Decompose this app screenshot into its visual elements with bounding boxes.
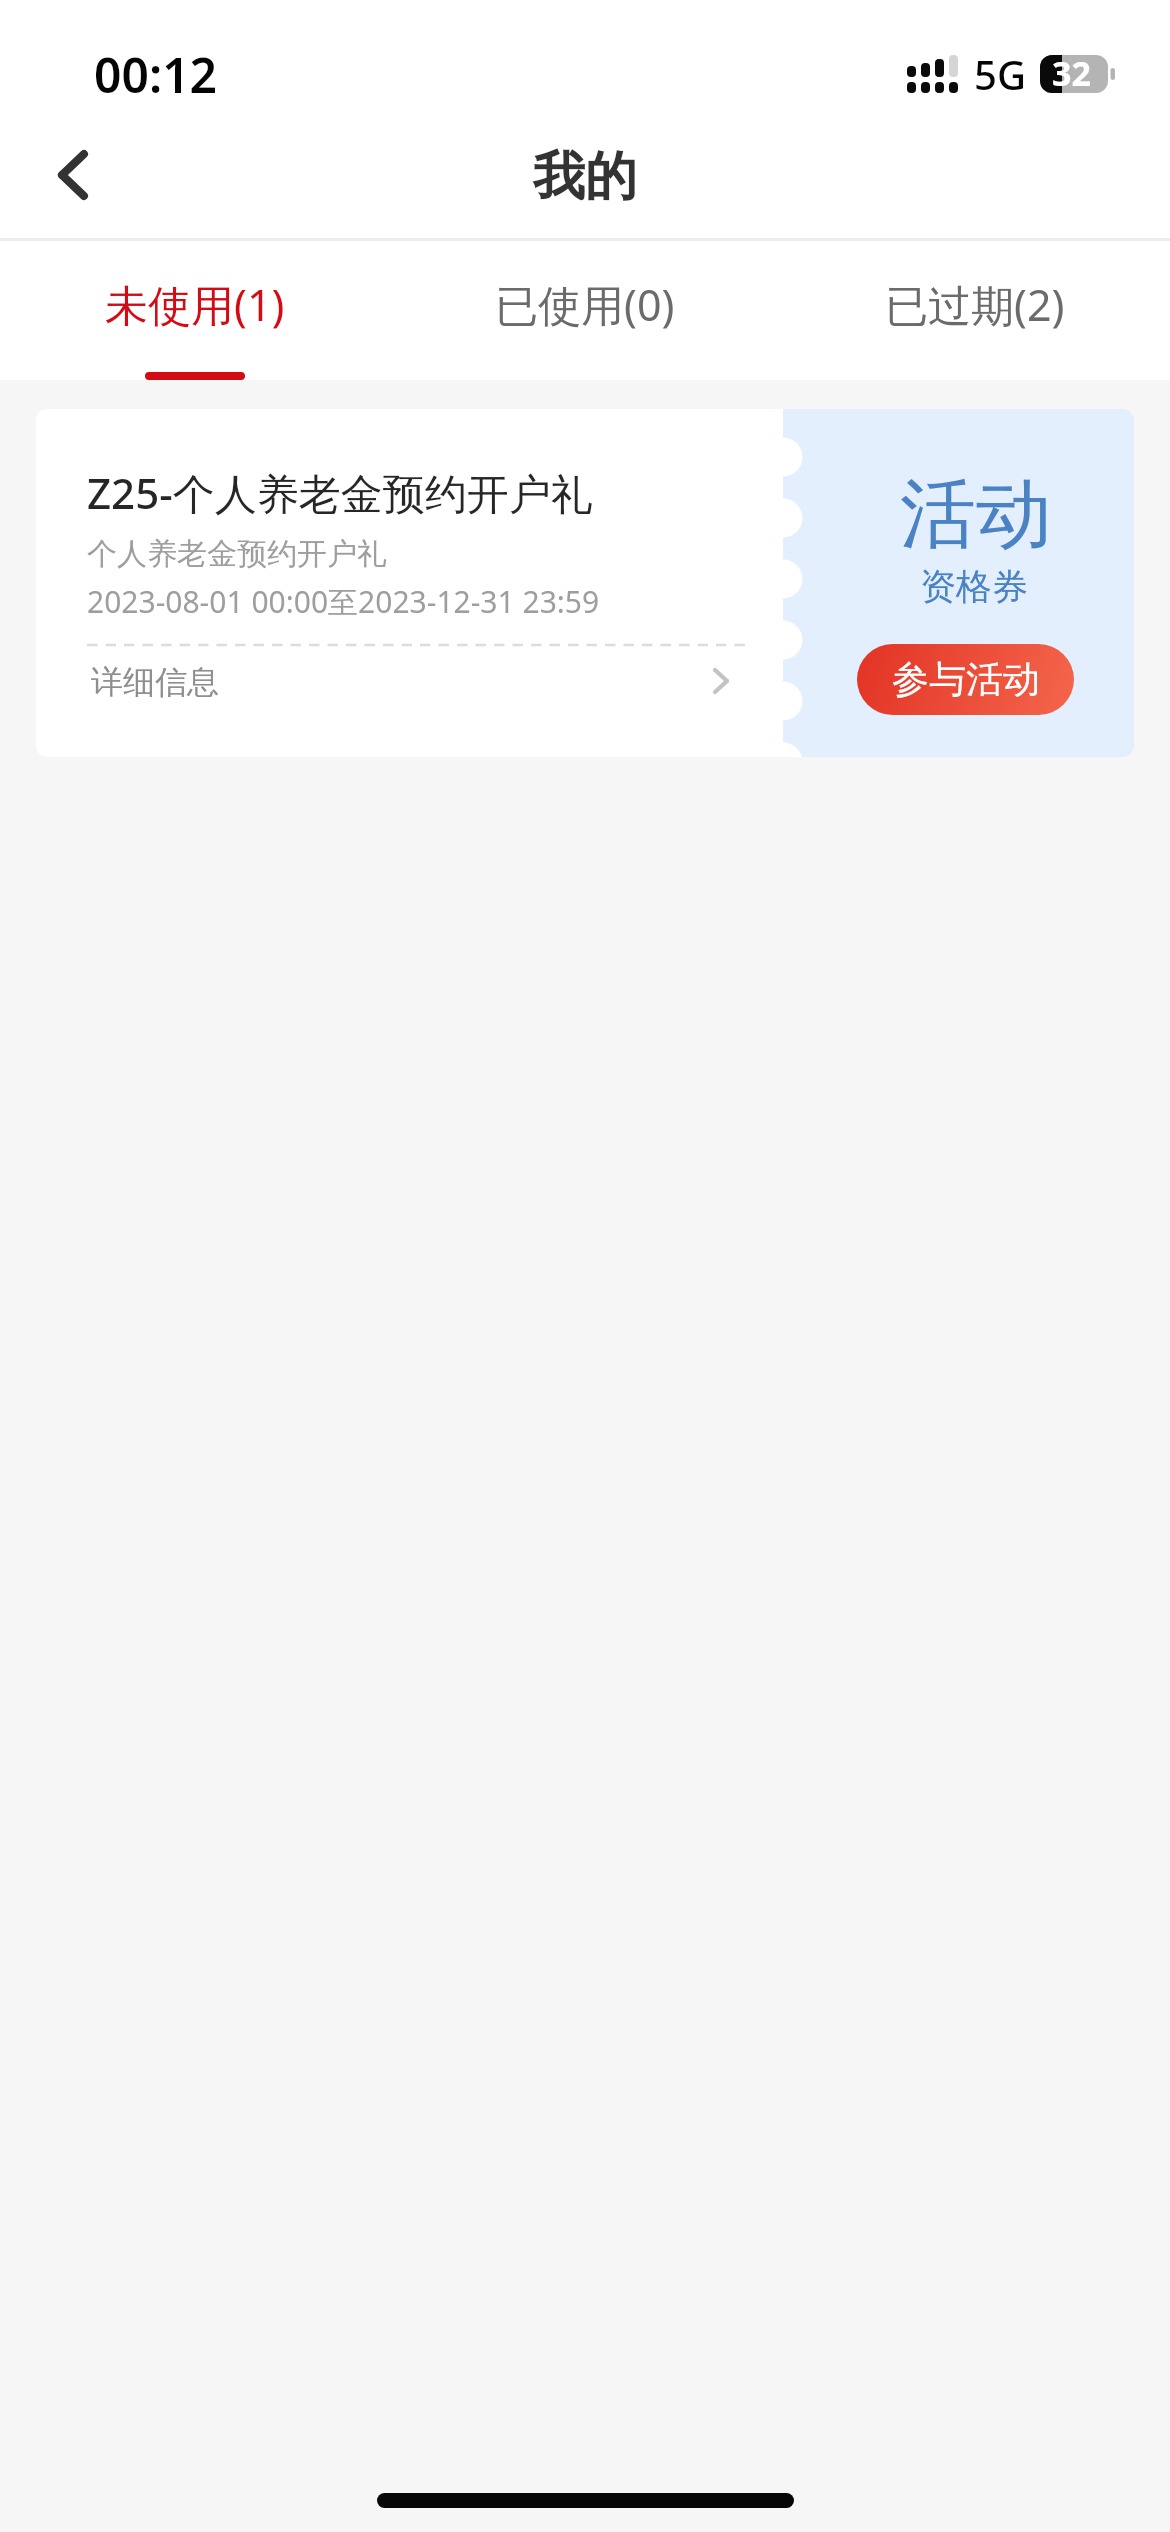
staticText: Z25-个人养老金预约开户礼 bbox=[87, 464, 593, 521]
staticText: 个人养老金预约开户礼 bbox=[87, 535, 387, 573]
button[interactable]: Back bbox=[25, 134, 107, 216]
staticText: 已使用(0) bbox=[495, 275, 675, 334]
button[interactable]: 未使用(1) bbox=[0, 241, 390, 380]
staticText: 32 bbox=[1052, 50, 1091, 88]
button[interactable]: 已使用(0) bbox=[390, 241, 780, 380]
staticText: 2023-08-01 00:00至2023-12-31 23:59 bbox=[87, 581, 600, 622]
button[interactable]: 已过期(2) bbox=[780, 241, 1170, 380]
staticText: 00:12 bbox=[94, 42, 218, 107]
button[interactable]: Z25-个人养老金预约开户礼 bbox=[36, 409, 1134, 757]
staticText: 参与活动 bbox=[892, 656, 1040, 703]
staticText: 已过期(2) bbox=[885, 275, 1065, 334]
button[interactable]: 参与活动 bbox=[857, 644, 1074, 715]
staticText: 我的 bbox=[533, 144, 637, 210]
staticText: 详细信息 bbox=[91, 662, 219, 702]
button[interactable]: 详细信息 bbox=[36, 650, 783, 734]
staticText: 5G bbox=[974, 47, 1026, 101]
staticText: 未使用(1) bbox=[105, 275, 285, 334]
staticText: 活动 bbox=[900, 467, 1052, 563]
staticText: 资格券 bbox=[920, 564, 1028, 609]
